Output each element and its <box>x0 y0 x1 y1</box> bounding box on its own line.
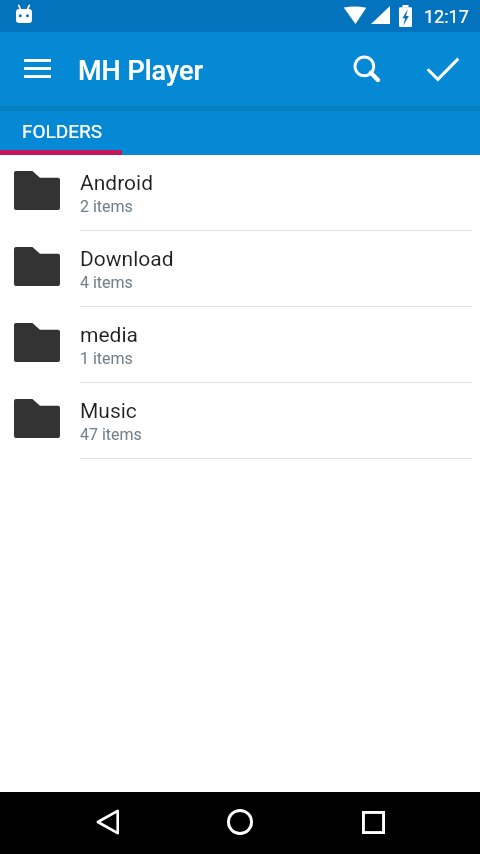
staticText: 2 items <box>80 197 133 216</box>
button[interactable]: Back <box>72 792 142 854</box>
button[interactable]: Search <box>342 42 395 99</box>
staticText: 47 items <box>80 425 142 444</box>
staticText: Download <box>80 247 174 272</box>
button[interactable]: Download <box>0 231 480 307</box>
button[interactable]: FOLDERS <box>0 109 122 155</box>
staticText: 12:17 <box>424 6 469 27</box>
button[interactable]: Confirm selection <box>415 40 470 97</box>
staticText: 4 items <box>80 273 133 292</box>
staticText: 1 items <box>80 349 133 368</box>
button[interactable]: Recent apps <box>338 792 408 854</box>
button[interactable]: Music <box>0 383 480 459</box>
button[interactable]: Android <box>0 155 480 231</box>
staticText: media <box>80 323 138 348</box>
staticText: Android <box>80 171 153 196</box>
button[interactable]: Home <box>205 792 275 854</box>
staticText: FOLDERS <box>22 120 103 142</box>
staticText: Music <box>80 399 137 424</box>
button[interactable]: Open navigation menu <box>10 41 65 96</box>
button[interactable]: media <box>0 307 480 383</box>
staticText: MH Player <box>78 55 204 87</box>
